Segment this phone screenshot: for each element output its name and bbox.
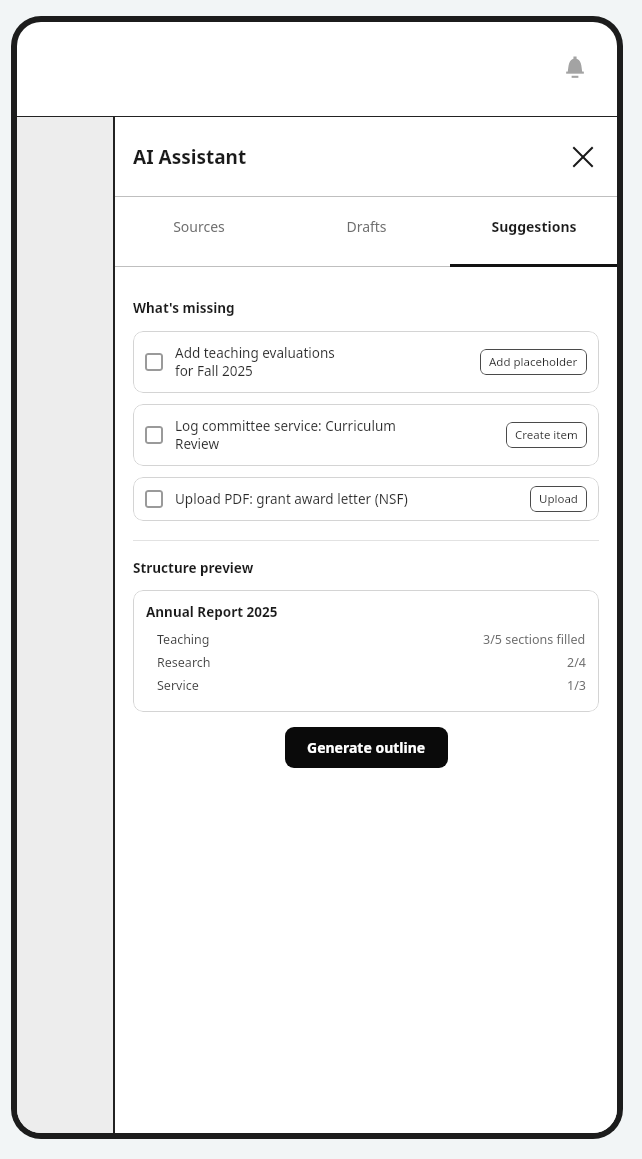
button[interactable]: Toggle: Upload	[133, 477, 599, 521]
staticText: Service	[157, 677, 199, 694]
button[interactable]: Create item	[506, 422, 587, 448]
button[interactable]: Notifications	[553, 47, 597, 91]
staticText: Suggestions	[491, 217, 577, 236]
button[interactable]: Add placeholder	[480, 349, 587, 375]
staticText: Generate outline	[307, 738, 426, 757]
staticText: 3/5 sections filled	[483, 631, 586, 648]
button[interactable]: Annual Report 2025	[133, 590, 599, 712]
button[interactable]: Toggle: Add placeholder	[145, 353, 163, 371]
staticText: Add placeholder	[489, 354, 578, 370]
staticText: Create item	[515, 427, 578, 443]
staticText: What's missing	[133, 299, 235, 317]
staticText: Upload PDF: grant award letter (NSF)	[175, 490, 408, 508]
staticText: Annual Report 2025	[146, 603, 278, 621]
staticText: Teaching	[157, 631, 210, 648]
staticText: AI Assistant	[133, 144, 247, 170]
staticText: for Fall 2025	[175, 362, 253, 380]
button[interactable]: Toggle: Add placeholder	[133, 331, 599, 393]
button[interactable]: Toggle: Create item	[145, 426, 163, 444]
button[interactable]: Toggle: Upload	[145, 490, 163, 508]
staticText: Log committee service: Curriculum	[175, 417, 396, 435]
button[interactable]: Sources	[115, 197, 283, 267]
staticText: Sources	[173, 217, 225, 236]
staticText: Upload	[539, 491, 578, 507]
staticText: 2/4	[567, 654, 586, 671]
button[interactable]: Suggestions	[450, 197, 617, 267]
staticText: Add teaching evaluations	[175, 344, 335, 362]
staticText: Structure preview	[133, 559, 254, 577]
staticText: Drafts	[346, 217, 387, 236]
button[interactable]: Close	[563, 137, 603, 177]
staticText: 1/3	[567, 677, 586, 694]
staticText: Research	[157, 654, 211, 671]
button[interactable]: Drafts	[283, 197, 450, 267]
button[interactable]: Upload	[530, 486, 587, 512]
staticText: Review	[175, 435, 220, 453]
button[interactable]: Generate outline	[285, 727, 448, 768]
button[interactable]: Toggle: Create item	[133, 404, 599, 466]
